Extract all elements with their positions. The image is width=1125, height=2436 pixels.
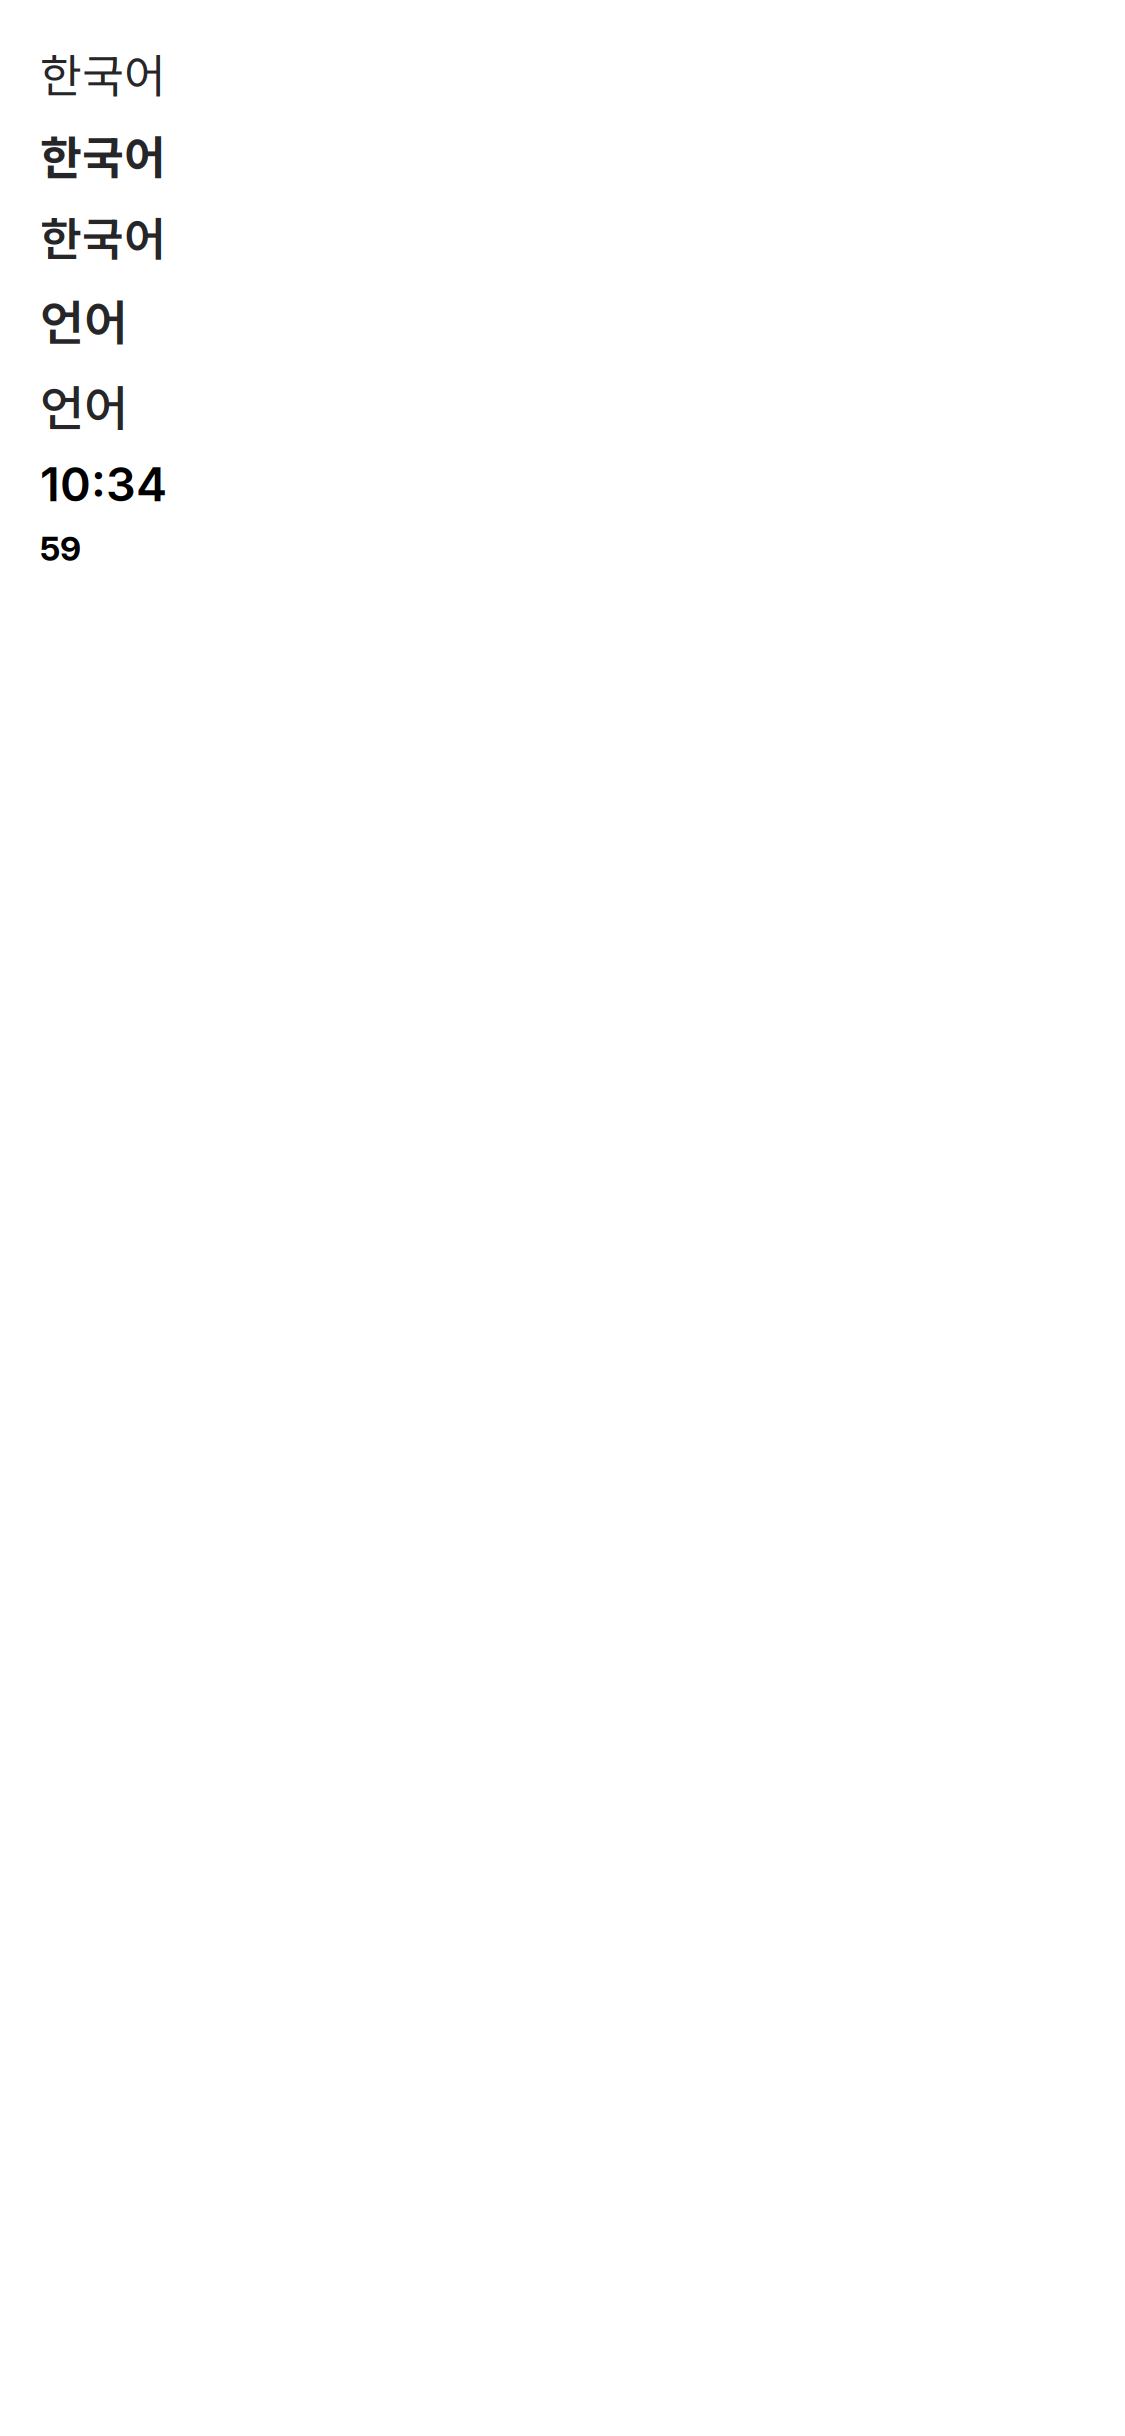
staticText: 언어 (40, 370, 128, 440)
staticText: 언어 (40, 285, 128, 354)
staticText: 10:34 (40, 456, 167, 512)
staticText: 한국어 (40, 203, 166, 269)
staticText: 한국어 (40, 122, 166, 187)
staticText: 59 (40, 528, 81, 569)
staticText: 한국어 (40, 40, 166, 106)
